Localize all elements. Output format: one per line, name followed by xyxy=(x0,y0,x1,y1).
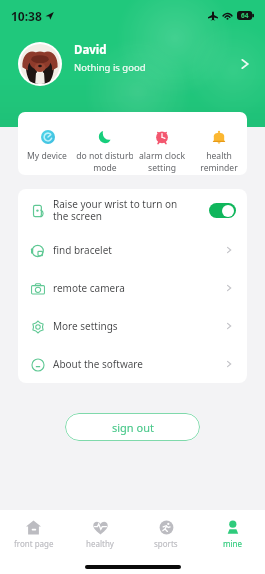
button[interactable]: front page xyxy=(0,520,67,549)
button[interactable]: alarm clock setting xyxy=(133,129,190,173)
button[interactable]: More settings xyxy=(18,307,247,345)
button[interactable]: David xyxy=(18,36,252,80)
button[interactable]: find bracelet xyxy=(18,231,247,269)
button[interactable]: Raise wrist toggle xyxy=(209,203,236,218)
staticText: About the software xyxy=(53,357,143,371)
staticText: sign out xyxy=(112,420,154,435)
button[interactable]: sign out xyxy=(65,413,200,441)
staticText: Nothing is good xyxy=(74,61,146,74)
staticText: My device xyxy=(27,150,67,162)
staticText: healthy xyxy=(86,538,114,549)
button[interactable]: health reminder xyxy=(190,129,247,173)
staticText: 10:38 xyxy=(11,8,42,24)
other: Open profile xyxy=(238,57,252,71)
button[interactable]: Raise your wrist to turn on the screen xyxy=(18,189,247,231)
staticText: mine xyxy=(223,538,242,549)
staticText: More settings xyxy=(53,319,118,333)
button[interactable]: My device xyxy=(18,129,76,162)
staticText: Raise your wrist to turn on the screen xyxy=(53,197,203,223)
staticText: sports xyxy=(154,538,178,549)
staticText: health reminder xyxy=(200,150,238,173)
button[interactable]: healthy xyxy=(67,520,133,549)
staticText: do not disturb mode xyxy=(76,150,133,173)
button[interactable]: sports xyxy=(133,520,199,549)
staticText: alarm clock setting xyxy=(139,150,185,173)
staticText: David xyxy=(74,42,107,58)
button[interactable]: mine xyxy=(199,520,265,549)
staticText: find bracelet xyxy=(53,243,112,257)
staticText: front page xyxy=(14,538,54,549)
staticText: 64 xyxy=(241,11,249,20)
staticText: remote camera xyxy=(53,281,125,295)
button[interactable]: remote camera xyxy=(18,269,247,307)
button[interactable]: About the software xyxy=(18,345,247,383)
button[interactable]: do not disturb mode xyxy=(76,129,133,173)
